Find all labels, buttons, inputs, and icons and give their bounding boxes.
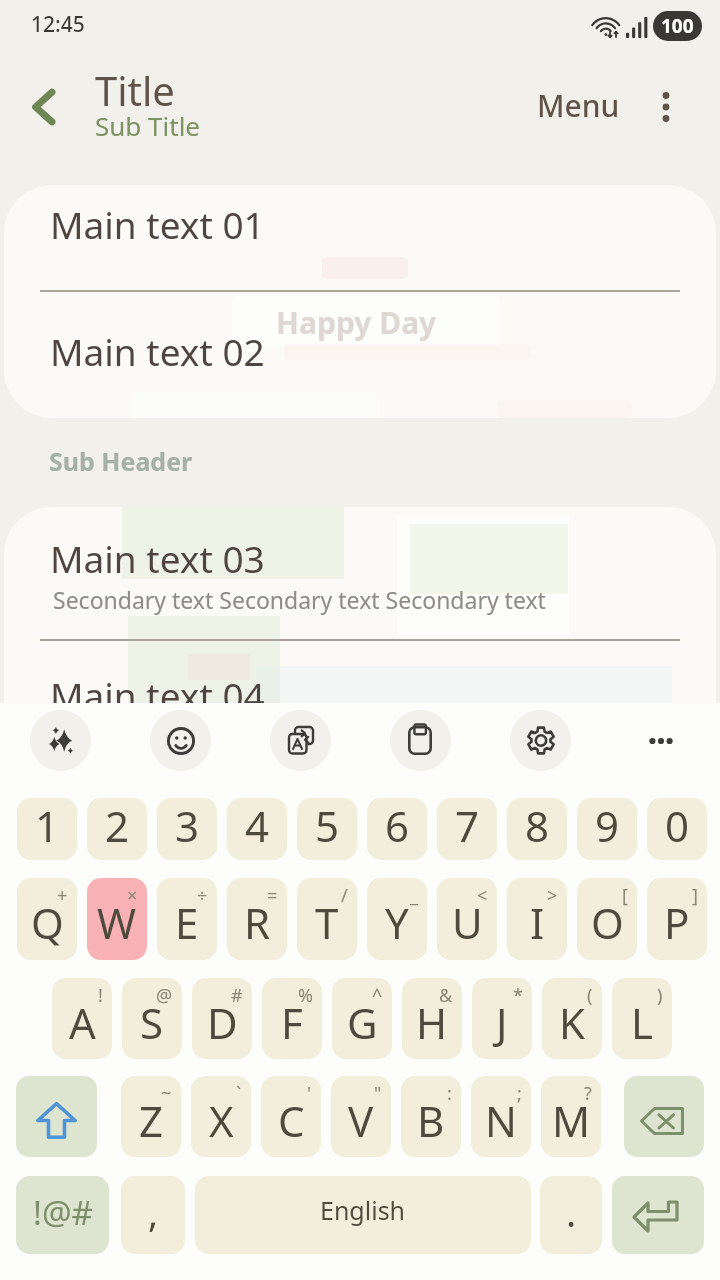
button[interactable]: 6	[367, 798, 427, 860]
staticText: &	[439, 983, 453, 1008]
button[interactable]: Menu	[524, 77, 632, 133]
button[interactable]: B	[401, 1076, 461, 1157]
staticText: )	[657, 983, 663, 1008]
button[interactable]: G	[332, 978, 392, 1059]
staticText: 12:45	[31, 10, 85, 39]
button[interactable]: R	[227, 878, 287, 960]
button[interactable]: Main text 04	[4, 640, 716, 757]
button[interactable]: English	[195, 1176, 531, 1254]
staticText: L	[631, 994, 654, 1051]
button[interactable]: Y	[367, 878, 427, 960]
staticText: *	[513, 983, 523, 1008]
button[interactable]: U	[437, 878, 497, 960]
button[interactable]: 3	[157, 798, 217, 860]
button[interactable]: A	[52, 978, 112, 1059]
staticText: Sub Title	[95, 108, 201, 143]
staticText: (	[587, 983, 593, 1008]
staticText: 100	[661, 13, 694, 39]
staticText: I	[530, 894, 545, 951]
staticText: O	[591, 894, 624, 951]
button[interactable]: 5	[297, 798, 357, 860]
staticText: K	[559, 994, 585, 1051]
staticText: Title	[95, 63, 175, 117]
staticText: ~	[161, 1081, 172, 1106]
staticText: 2	[105, 798, 130, 854]
staticText: B	[417, 1092, 445, 1149]
staticText: English	[320, 1193, 406, 1227]
button[interactable]: ,	[121, 1176, 185, 1254]
button[interactable]: X	[191, 1076, 251, 1157]
staticText: /	[341, 883, 348, 908]
button[interactable]: T	[297, 878, 357, 960]
staticText: Q	[31, 894, 64, 951]
staticText: ×	[127, 883, 138, 908]
button[interactable]: Main text 02	[4, 291, 716, 418]
staticText: Secondary text Secondary text Secondary …	[53, 584, 546, 615]
staticText: '	[307, 1081, 312, 1106]
button[interactable]: Q	[17, 878, 77, 960]
staticText: ^	[372, 983, 383, 1008]
staticText: _	[410, 883, 418, 908]
staticText: %	[298, 983, 313, 1008]
button[interactable]: Back	[16, 79, 72, 135]
button[interactable]: C	[261, 1076, 321, 1157]
staticText: J	[496, 994, 508, 1051]
button[interactable]: J	[472, 978, 532, 1059]
button[interactable]: 0	[647, 798, 707, 860]
button[interactable]: 2	[87, 798, 147, 860]
staticText: Main text 03	[50, 533, 265, 583]
button[interactable]: Translate	[270, 710, 331, 771]
staticText: Happy Day	[276, 302, 437, 343]
button[interactable]: W	[87, 878, 147, 960]
button[interactable]: E	[157, 878, 217, 960]
staticText: X	[209, 1092, 234, 1149]
button[interactable]: Enter	[612, 1176, 704, 1254]
staticText: .	[566, 1186, 577, 1238]
staticText: `	[236, 1081, 242, 1106]
button[interactable]: P	[647, 878, 707, 960]
staticText: ;	[517, 1081, 522, 1106]
staticText: =	[267, 883, 278, 908]
button[interactable]: Magic compose	[30, 710, 91, 771]
button[interactable]: Clipboard	[390, 710, 451, 771]
staticText: U	[452, 894, 483, 951]
button[interactable]: !@#	[16, 1176, 109, 1254]
button[interactable]: 9	[577, 798, 637, 860]
button[interactable]: F	[262, 978, 322, 1059]
button[interactable]: H	[402, 978, 462, 1059]
staticText: D	[207, 994, 238, 1051]
button[interactable]: Main text 03	[4, 507, 716, 639]
button[interactable]: More options	[638, 79, 694, 135]
button[interactable]: Z	[121, 1076, 181, 1157]
staticText: G	[347, 994, 378, 1051]
staticText: "	[374, 1081, 382, 1106]
button[interactable]: Settings	[510, 710, 571, 771]
button[interactable]: V	[331, 1076, 391, 1157]
button[interactable]: K	[542, 978, 602, 1059]
button[interactable]: Emoji	[150, 710, 211, 771]
button[interactable]: 1	[17, 798, 77, 860]
staticText: S	[140, 994, 164, 1051]
button[interactable]: .	[540, 1176, 602, 1254]
button[interactable]: I	[507, 878, 567, 960]
button[interactable]: D	[192, 978, 252, 1059]
button[interactable]: 7	[437, 798, 497, 860]
staticText: C	[278, 1092, 305, 1149]
staticText: W	[97, 894, 137, 951]
button[interactable]: M	[541, 1076, 601, 1157]
button[interactable]: S	[122, 978, 182, 1059]
button[interactable]: More	[630, 710, 691, 771]
staticText: T	[315, 894, 339, 951]
button[interactable]: 8	[507, 798, 567, 860]
button[interactable]: Shift	[16, 1076, 97, 1157]
button[interactable]: N	[471, 1076, 531, 1157]
button[interactable]: O	[577, 878, 637, 960]
staticText: N	[485, 1092, 517, 1149]
button[interactable]: L	[612, 978, 672, 1059]
button[interactable]: Backspace	[624, 1076, 704, 1157]
staticText: 3	[175, 798, 200, 854]
staticText: E	[175, 894, 199, 951]
button[interactable]: 4	[227, 798, 287, 860]
staticText: 1	[35, 798, 60, 854]
button[interactable]: Main text 01	[4, 185, 716, 290]
